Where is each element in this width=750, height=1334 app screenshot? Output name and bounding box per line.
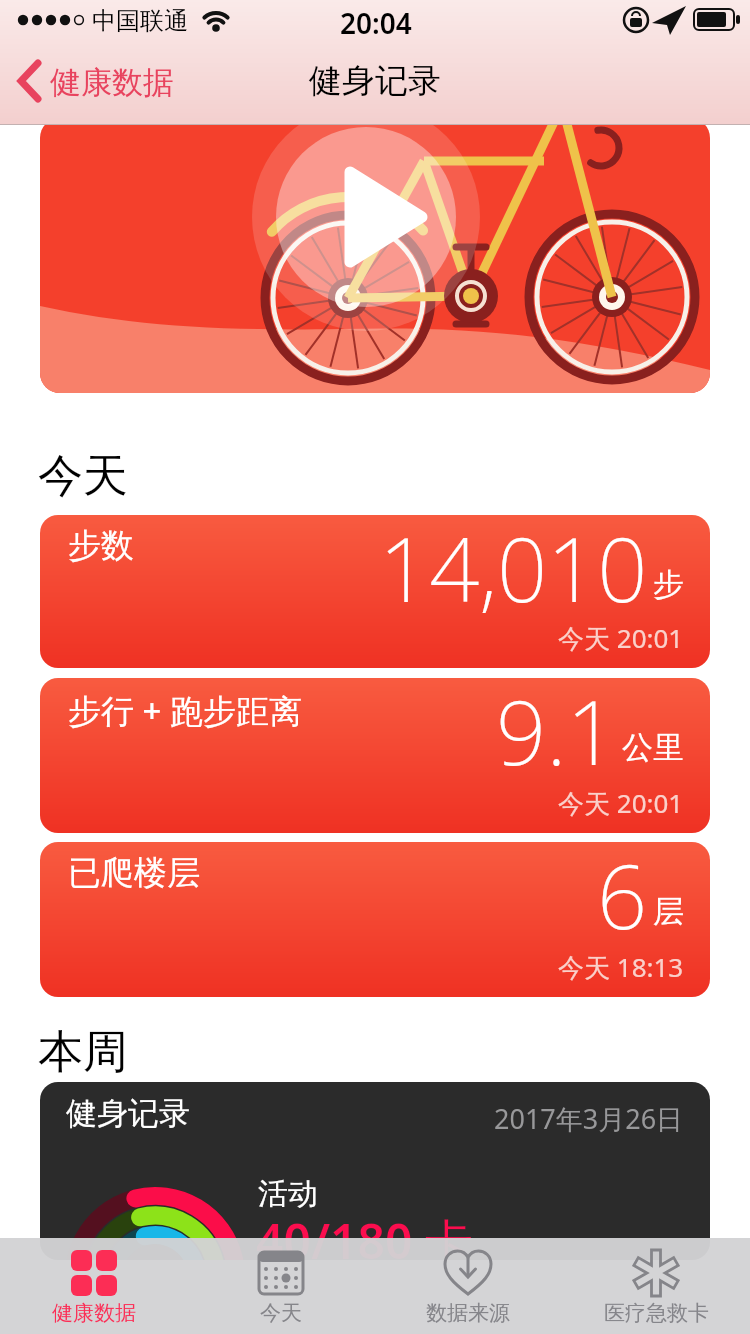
button[interactable]: 步数 [40, 515, 710, 668]
staticText: 本周 [38, 1024, 128, 1081]
staticText: 活动 [258, 1175, 318, 1213]
button[interactable] [40, 118, 710, 393]
button[interactable]: 健康数据 [0, 1238, 187, 1334]
staticText: 20:04 [340, 4, 412, 42]
staticText: 14,010 [379, 515, 648, 628]
staticText: 健身记录 [309, 60, 441, 102]
staticText: 今天 [38, 448, 128, 505]
staticText: 中国联通 [92, 6, 188, 36]
button[interactable]: 健康数据 [16, 58, 174, 106]
staticText: 公里 [622, 728, 684, 767]
staticText: 层 [653, 892, 684, 931]
staticText: 步 [653, 565, 684, 604]
staticText: 健康数据 [50, 63, 174, 102]
button[interactable]: 步行 + 跑步距离 [40, 678, 710, 833]
staticText: 9.1 [496, 678, 617, 791]
staticText: 今天 [260, 1300, 302, 1326]
staticText: 40/180 卡 [256, 1208, 473, 1260]
staticText: 步行 + 跑步距离 [68, 688, 303, 733]
staticText: 2017年3月26日 [494, 1100, 684, 1137]
staticText: 数据来源 [426, 1300, 510, 1326]
staticText: 步数 [68, 525, 134, 567]
staticText: 健康数据 [52, 1300, 136, 1326]
staticText: 医疗急救卡 [604, 1300, 709, 1326]
staticText: 健身记录 [66, 1094, 190, 1133]
button[interactable]: 已爬楼层 [40, 842, 710, 997]
button[interactable]: 数据来源 [374, 1238, 562, 1334]
staticText: 今天 20:01 [558, 620, 684, 656]
button[interactable]: 医疗急救卡 [562, 1238, 750, 1334]
staticText: 已爬楼层 [68, 852, 200, 894]
button[interactable]: 健身记录 [40, 1082, 710, 1260]
staticText: 今天 18:13 [558, 949, 684, 985]
staticText: 今天 20:01 [558, 785, 684, 821]
staticText: 6 [597, 842, 648, 955]
button[interactable]: 今天 [187, 1238, 374, 1334]
